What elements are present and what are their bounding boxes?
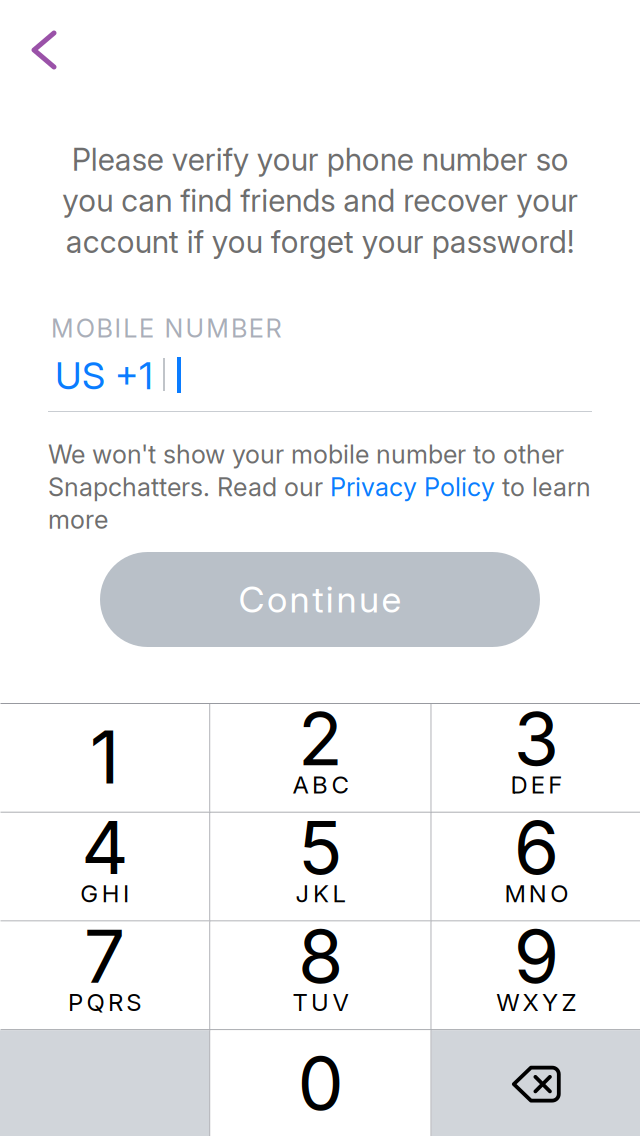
staticText: N	[529, 880, 547, 907]
staticText: S	[126, 988, 141, 1016]
staticText: 0	[297, 1054, 343, 1112]
staticText: T	[293, 988, 308, 1016]
staticText: US +1	[55, 353, 153, 398]
staticText: I	[123, 880, 129, 907]
button[interactable]: 6	[432, 813, 640, 921]
staticText: n	[336, 578, 356, 621]
button[interactable]: Back	[6, 12, 82, 88]
staticText: H	[102, 880, 120, 907]
button[interactable]: 8	[210, 921, 431, 1029]
staticText: C	[331, 771, 348, 798]
staticText: F	[548, 771, 562, 798]
staticText: n	[290, 578, 310, 621]
button[interactable]: 2	[210, 704, 431, 812]
staticText: i	[326, 578, 334, 621]
button[interactable]: 7	[0, 921, 209, 1029]
staticText: Z	[561, 988, 576, 1016]
staticText: u	[359, 578, 379, 621]
staticText: t	[312, 578, 323, 621]
staticText: L	[332, 880, 345, 907]
staticText: 5	[298, 818, 343, 877]
staticText: 7	[84, 927, 126, 985]
staticText: 1	[90, 728, 120, 786]
staticText: 3	[514, 709, 559, 768]
button[interactable]: 1	[0, 704, 209, 812]
button[interactable]: C	[100, 552, 540, 647]
staticText: 2	[298, 709, 343, 768]
staticText: K	[313, 880, 329, 907]
staticText: Q	[86, 988, 104, 1016]
staticText: We won't show your mobile number to othe…	[48, 439, 591, 535]
staticText: U	[311, 988, 329, 1016]
staticText: E	[531, 771, 545, 798]
button[interactable]: 9	[432, 921, 640, 1029]
button[interactable]: Delete	[432, 1030, 640, 1136]
staticText: O	[550, 880, 568, 907]
staticText: A	[293, 771, 309, 798]
button[interactable]: 4	[0, 813, 209, 921]
staticText: X	[523, 988, 539, 1016]
staticText: W	[496, 988, 519, 1016]
staticText: 9	[514, 927, 559, 985]
staticText: Please verify your phone number so you c…	[62, 141, 578, 260]
staticText: MOBILE NUMBER	[51, 313, 282, 344]
staticText: 8	[298, 927, 343, 985]
staticText: o	[267, 578, 287, 621]
staticText: 4	[81, 818, 128, 877]
staticText: D	[510, 771, 527, 798]
staticText: e	[382, 578, 402, 621]
button[interactable]: 5	[210, 813, 431, 921]
staticText: J	[296, 880, 310, 907]
staticText: B	[312, 771, 328, 798]
staticText: P	[68, 988, 83, 1016]
button[interactable]: 3	[432, 704, 640, 812]
staticText: R	[108, 988, 123, 1016]
staticText: Y	[542, 988, 558, 1016]
staticText: 6	[514, 818, 559, 877]
button[interactable]: 0	[210, 1030, 431, 1136]
staticText: M	[504, 880, 525, 907]
staticText: G	[80, 880, 98, 907]
staticText: V	[332, 988, 348, 1016]
staticText: C	[238, 578, 264, 621]
